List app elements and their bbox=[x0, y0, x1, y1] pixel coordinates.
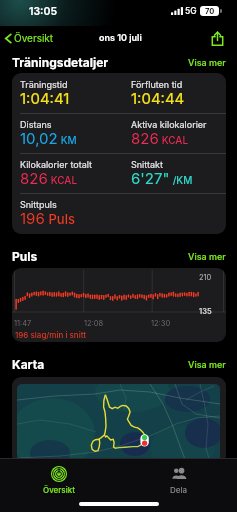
staticText: Snittpuls bbox=[20, 199, 57, 210]
staticText: 826 bbox=[131, 129, 159, 147]
staticText: Visa mer bbox=[188, 251, 226, 262]
staticText: Visa mer bbox=[188, 57, 226, 68]
staticText: ons 10 juli bbox=[99, 32, 142, 43]
staticText: Översikt bbox=[43, 485, 75, 495]
staticText: Aktiva kilokalorier bbox=[131, 119, 207, 130]
staticText: Puls bbox=[45, 211, 75, 227]
staticText: 1:04:41 bbox=[20, 89, 70, 107]
button[interactable]: Dela bbox=[206, 27, 228, 49]
staticText: 70 bbox=[205, 7, 215, 16]
staticText: Visa mer bbox=[188, 359, 226, 370]
staticText: 210 bbox=[199, 273, 212, 282]
staticText: 1:04:44 bbox=[131, 89, 185, 107]
staticText: 6'27" bbox=[131, 169, 170, 187]
staticText: /KM bbox=[170, 174, 193, 186]
staticText: KCAL bbox=[48, 174, 78, 186]
staticText: KM bbox=[58, 134, 77, 146]
button[interactable]: Visa mer bbox=[188, 53, 237, 68]
staticText: Dela bbox=[170, 485, 188, 495]
button[interactable]: Dela bbox=[159, 459, 199, 495]
staticText: 826 bbox=[20, 169, 48, 187]
staticText: Träningstid bbox=[20, 79, 68, 90]
staticText: 12:08 bbox=[84, 319, 104, 328]
staticText: 196 bbox=[20, 209, 45, 227]
staticText: 13:05 bbox=[29, 5, 57, 18]
staticText: 10,02 bbox=[20, 129, 58, 147]
staticText: Kilokalorier totalt bbox=[20, 159, 92, 170]
staticText: Puls bbox=[12, 249, 38, 264]
staticText: 11:47 bbox=[14, 319, 32, 328]
staticText: Förfluten tid bbox=[131, 79, 183, 90]
staticText: Distans bbox=[20, 119, 52, 130]
staticText: 5G bbox=[185, 6, 197, 16]
button[interactable]: Visa mer bbox=[188, 247, 237, 262]
button[interactable]: Visa mer bbox=[188, 355, 237, 370]
staticText: 196 slag/min i snitt bbox=[15, 330, 86, 340]
staticText: Snittakt bbox=[131, 159, 163, 170]
staticText: Översikt bbox=[14, 32, 54, 44]
button[interactable]: Översikt bbox=[39, 459, 79, 495]
staticText: KCAL bbox=[159, 134, 189, 146]
staticText: 135 bbox=[199, 307, 212, 316]
staticText: Träningsdetaljer bbox=[12, 55, 109, 70]
staticText: 12:30 bbox=[151, 319, 171, 328]
button[interactable]: Översikt bbox=[4, 28, 54, 48]
staticText: Karta bbox=[12, 357, 45, 372]
